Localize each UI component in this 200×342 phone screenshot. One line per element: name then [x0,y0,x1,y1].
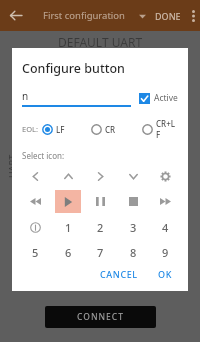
button[interactable]: OK [152,264,178,283]
button[interactable]: 9 [152,241,178,264]
button[interactable]: CANCEL [94,264,144,283]
button[interactable]: 3 [120,216,146,239]
staticText: 8 [130,245,137,260]
button[interactable]: More options [187,6,200,26]
button[interactable]: Select configuration [135,9,149,23]
staticText: EOL: [22,124,38,134]
button[interactable]: DONE [149,6,187,26]
staticText: CR+LF [156,118,178,140]
staticText: 4 [162,220,169,235]
button[interactable]: Right [87,165,113,188]
button[interactable]: LF [42,124,65,135]
button[interactable]: 7 [87,241,113,264]
staticText: 1 [65,220,72,235]
button[interactable]: Pause [87,190,113,213]
staticText: 6 [65,245,72,260]
staticText: DONE [155,10,181,22]
staticText: LF [56,124,65,135]
button[interactable]: Info [22,216,48,239]
staticText: Select icon: [22,150,65,161]
button[interactable]: 8 [120,241,146,264]
staticText: CANCEL [100,268,138,279]
staticText: n [22,89,29,103]
button[interactable]: Down [120,165,146,188]
button[interactable]: Left [22,165,48,188]
staticText: 3 [130,220,137,235]
button[interactable]: 6 [55,241,81,264]
button[interactable]: Up [55,165,81,188]
button[interactable]: 5 [22,241,48,264]
staticText: Active [154,92,178,104]
staticText: First configuration [43,9,125,22]
staticText: 5 [32,245,39,260]
button[interactable]: Stop [120,190,146,213]
staticText: CONNECT [77,311,124,323]
button[interactable]: CR [91,124,116,135]
button[interactable]: Fast forward [152,190,178,213]
button[interactable]: Active [139,92,178,104]
button[interactable]: CR+LF [142,118,178,140]
button[interactable]: 2 [87,216,113,239]
staticText: 9 [162,245,169,260]
button[interactable]: Settings [152,165,178,188]
staticText: UART [6,154,18,178]
button[interactable]: CONNECT [45,306,156,328]
staticText: CR [105,124,116,135]
button[interactable]: Back [0,0,31,31]
button[interactable]: Rewind [22,190,48,213]
staticText: 2 [97,220,104,235]
staticText: DEFAULT UART [58,34,143,50]
button[interactable]: 1 [55,216,81,239]
button[interactable]: 4 [152,216,178,239]
staticText: 7 [97,245,104,260]
button[interactable]: Play [55,190,81,213]
staticText: Configure button [22,60,125,77]
staticText: OK [158,268,172,279]
